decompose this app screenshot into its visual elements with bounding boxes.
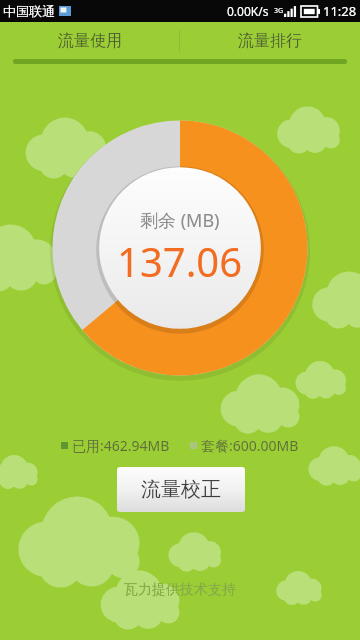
staticText: 套餐:600.00MB [201,436,299,455]
staticText: 已用:462.94MB [72,436,170,455]
staticText: 流量使用 [58,31,122,51]
button[interactable]: 瓦力提供技术支持 [124,581,236,599]
button[interactable]: 流量校正 [117,467,245,512]
staticText: 0.00K/s [227,3,269,19]
staticText: 137.06 [117,234,243,288]
button[interactable]: 流量使用 [0,22,179,59]
button[interactable]: 流量排行 [180,22,360,59]
staticText: 中国联通 [3,3,55,19]
staticText: 流量排行 [238,31,302,51]
staticText: 剩余 (MB) [140,208,220,233]
staticText: 11:28 [323,2,357,20]
staticText: 流量校正 [141,477,221,502]
staticText: 3G [274,6,284,16]
